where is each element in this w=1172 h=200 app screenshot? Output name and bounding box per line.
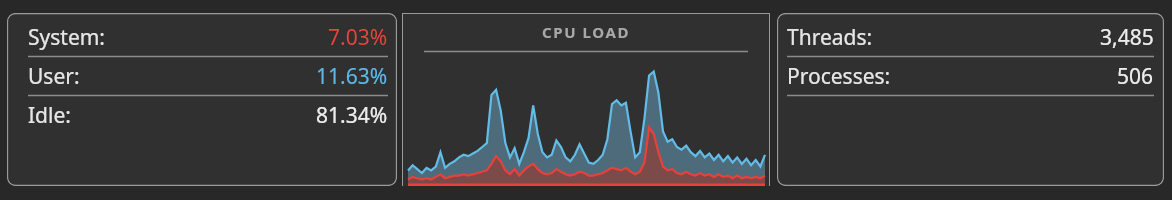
button[interactable]: CPU LOAD (402, 13, 770, 186)
button[interactable]: Threads: (787, 18, 1154, 56)
button[interactable]: System: (7, 13, 397, 186)
button[interactable]: User: (28, 57, 388, 95)
staticText: 11.63% (316, 62, 388, 91)
staticText: CPU LOAD (542, 22, 630, 42)
other: CPU load graph (408, 52, 765, 186)
staticText: 506 (1117, 62, 1154, 91)
staticText: Idle: (28, 101, 71, 130)
staticText: 3,485 (1100, 23, 1154, 52)
staticText: System: (28, 23, 105, 52)
staticText: Threads: (787, 23, 873, 52)
button[interactable]: Threads: (777, 13, 1164, 186)
button[interactable]: Idle: (28, 96, 388, 134)
button[interactable]: System: (28, 18, 388, 56)
staticText: User: (28, 62, 80, 91)
staticText: Processes: (787, 62, 891, 91)
staticText: 7.03% (328, 23, 388, 52)
staticText: 81.34% (316, 101, 388, 130)
button[interactable]: Processes: (787, 57, 1154, 95)
